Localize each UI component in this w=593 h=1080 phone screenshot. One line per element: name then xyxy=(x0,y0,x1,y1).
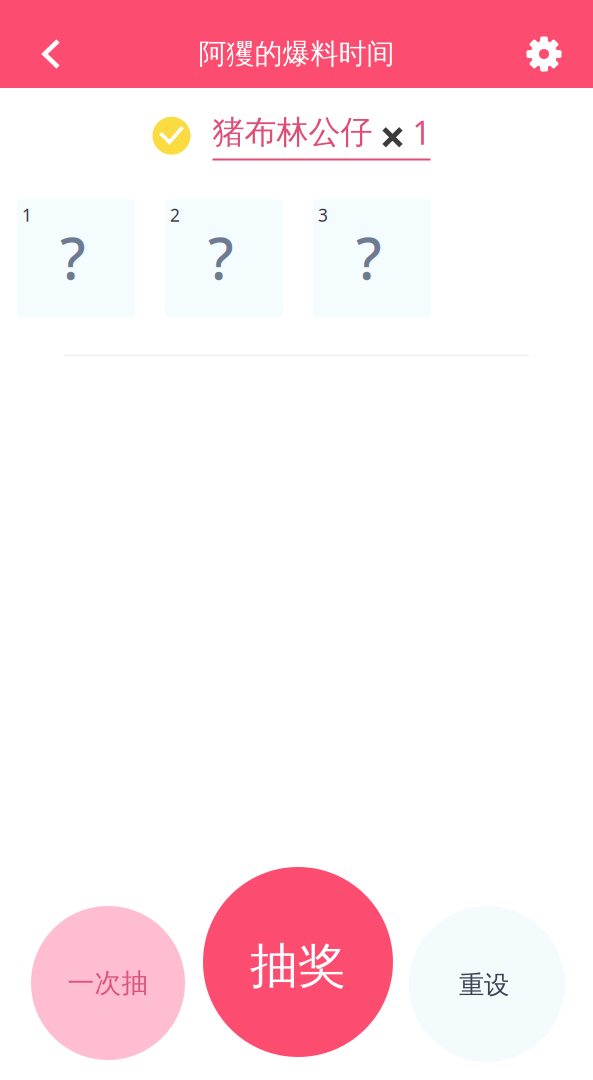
button[interactable]: Slot 3 xyxy=(313,199,431,317)
staticText: 1 xyxy=(22,203,32,226)
staticText: ? xyxy=(356,219,382,295)
staticText: ? xyxy=(60,219,86,295)
staticText: 3 xyxy=(318,203,328,226)
button[interactable]: Slot 2 xyxy=(165,199,283,317)
button[interactable]: Slot 1 xyxy=(17,199,135,317)
button[interactable]: 抽奖 xyxy=(203,867,393,1057)
button[interactable]: Back xyxy=(23,23,79,85)
staticText: 猪布林公仔 xyxy=(212,113,372,152)
staticText: 1 xyxy=(412,111,430,153)
button[interactable]: 猪布林公仔 xyxy=(152,111,430,160)
button[interactable]: Settings xyxy=(516,23,572,85)
staticText: 2 xyxy=(170,203,180,226)
staticText: ? xyxy=(208,219,234,295)
staticText: 一次抽 xyxy=(67,967,148,999)
button[interactable]: 重设 xyxy=(409,906,565,1062)
staticText: 重设 xyxy=(459,969,509,1000)
button[interactable]: 一次抽 xyxy=(31,906,185,1060)
staticText: 阿玃的爆料时间 xyxy=(198,37,394,71)
staticText: 抽奖 xyxy=(250,936,346,995)
